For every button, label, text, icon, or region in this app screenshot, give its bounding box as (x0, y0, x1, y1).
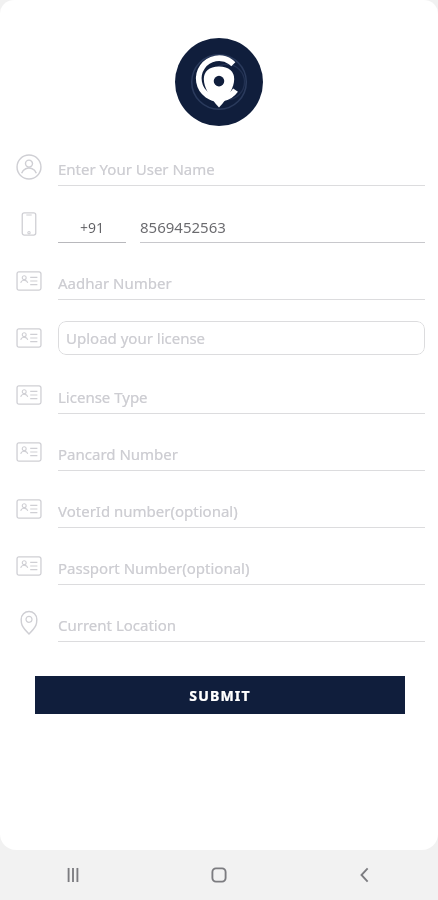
staticText: Upload your license (66, 328, 206, 348)
button[interactable]: VoterId number(optional) (58, 490, 425, 528)
staticText: VoterId number(optional) (58, 501, 238, 521)
staticText: 8569452563 (140, 217, 226, 237)
button[interactable]: Aadhar Number (58, 262, 425, 300)
staticText: Aadhar Number (58, 273, 172, 293)
staticText: +91 (80, 218, 105, 237)
button[interactable]: Passport Number(optional) (58, 547, 425, 585)
staticText: Current Location (58, 615, 177, 635)
button[interactable]: Current Location (58, 604, 425, 642)
button[interactable]: Upload your license (58, 321, 425, 355)
button[interactable]: +91 (58, 205, 126, 243)
button[interactable]: Recent apps (0, 850, 146, 900)
button[interactable]: Pancard Number (58, 433, 425, 471)
button[interactable]: License Type (58, 376, 425, 414)
staticText: License Type (58, 387, 148, 407)
staticText: SUBMIT (189, 686, 251, 705)
button[interactable]: Back (292, 850, 438, 900)
button[interactable]: Home (146, 850, 292, 900)
staticText: Passport Number(optional) (58, 558, 250, 578)
button[interactable]: SUBMIT (35, 676, 405, 714)
staticText: Pancard Number (58, 444, 178, 464)
button[interactable]: Enter Your User Name (58, 148, 425, 186)
button[interactable]: 8569452563 (140, 205, 425, 243)
staticText: Enter Your User Name (58, 159, 215, 179)
